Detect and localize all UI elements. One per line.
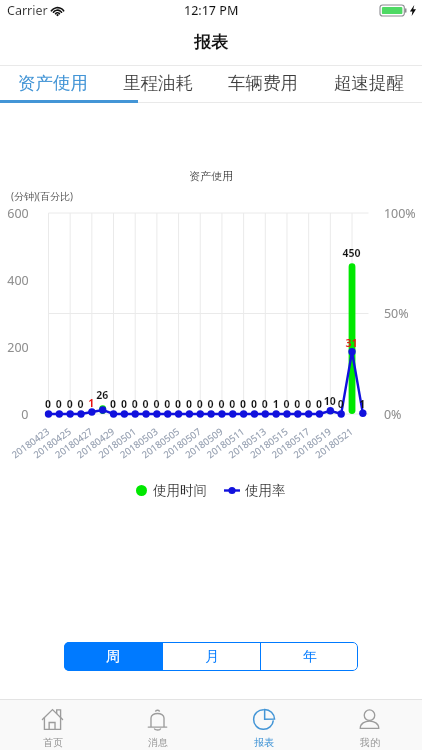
other: 我的 [359,709,380,730]
staticText: 12:17 PM [184,2,239,19]
staticText: 周 [106,648,120,666]
button[interactable]: 资产使用 [0,66,105,100]
other: 报表 [253,709,274,730]
staticText: Carrier [7,2,48,19]
button[interactable]: 消息 [105,700,210,750]
staticText: 超速提醒 [334,72,404,94]
staticText: 消息 [148,736,168,749]
button[interactable]: 里程油耗 [105,66,210,100]
button[interactable]: 我的 [316,700,422,750]
staticText: 报表 [194,32,228,53]
staticText: 报表 [254,736,274,749]
other: 首页 [42,709,63,730]
staticText: 资产使用 [0,169,422,183]
button[interactable]: 年 [261,642,358,671]
button[interactable]: 首页 [0,700,105,750]
staticText: 使用率 [245,482,286,499]
staticText: 使用时间 [153,482,207,499]
button[interactable]: 超速提醒 [316,66,422,100]
staticText: 年 [303,648,317,666]
button[interactable]: 周 [64,642,162,671]
staticText: 里程油耗 [123,72,193,94]
button[interactable]: 月 [163,642,260,671]
staticText: 资产使用 [18,72,88,94]
button[interactable]: 报表 [210,700,316,750]
staticText: 首页 [43,736,63,749]
other: 消息 [147,709,168,730]
staticText: 月 [205,648,219,666]
staticText: 车辆费用 [228,72,298,94]
staticText: 我的 [360,736,380,749]
button[interactable]: 车辆费用 [210,66,316,100]
